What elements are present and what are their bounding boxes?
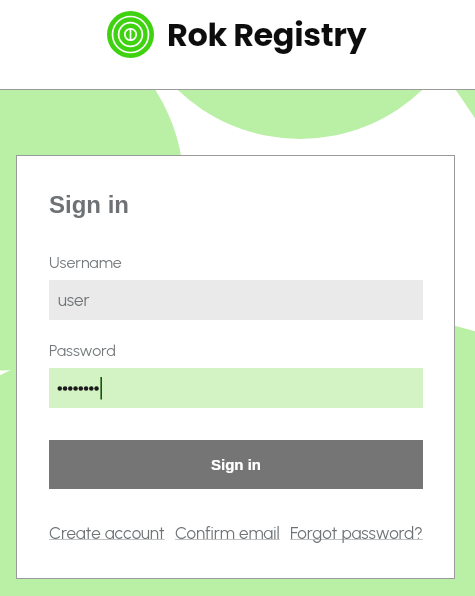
staticText: user [58,290,90,310]
other: Rok Registry logo [107,11,154,58]
staticText: Rok Registry [167,12,367,57]
staticText: Password [49,341,116,360]
button[interactable]: Confirm email [175,523,280,543]
button[interactable] [49,368,423,408]
staticText: Sign in [49,191,129,218]
staticText: Sign in [211,456,261,473]
button[interactable]: Sign in [49,440,423,489]
button[interactable]: Create account [49,523,165,543]
button[interactable]: Forgot password? [290,523,423,543]
staticText: Username [49,253,122,272]
button[interactable]: user [49,280,423,320]
